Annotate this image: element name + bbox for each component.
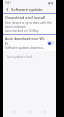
button[interactable]: Back bbox=[10, 108, 18, 116]
staticText: Your device is up to date with the lates… bbox=[5, 21, 54, 29]
staticText: Download and install bbox=[5, 15, 46, 20]
staticText: Software update bbox=[11, 7, 43, 12]
button[interactable]: Recents bbox=[41, 108, 49, 116]
staticText: Last checked on 12 May bbox=[5, 29, 39, 33]
button[interactable]: Auto download over Wi-Fi bbox=[3, 35, 56, 51]
staticText: Last update check bbox=[7, 55, 33, 59]
staticText: ● ▮ bbox=[48, 1, 54, 5]
button[interactable]: Auto download toggle bbox=[47, 41, 54, 45]
staticText: 9:41 bbox=[5, 1, 11, 5]
staticText: Software updates download automatically bbox=[5, 46, 46, 50]
button[interactable]: Home bbox=[26, 108, 34, 116]
button[interactable]: Download and install bbox=[3, 14, 56, 34]
staticText: Auto download over Wi-Fi bbox=[5, 36, 46, 46]
button[interactable]: Back bbox=[5, 7, 10, 12]
